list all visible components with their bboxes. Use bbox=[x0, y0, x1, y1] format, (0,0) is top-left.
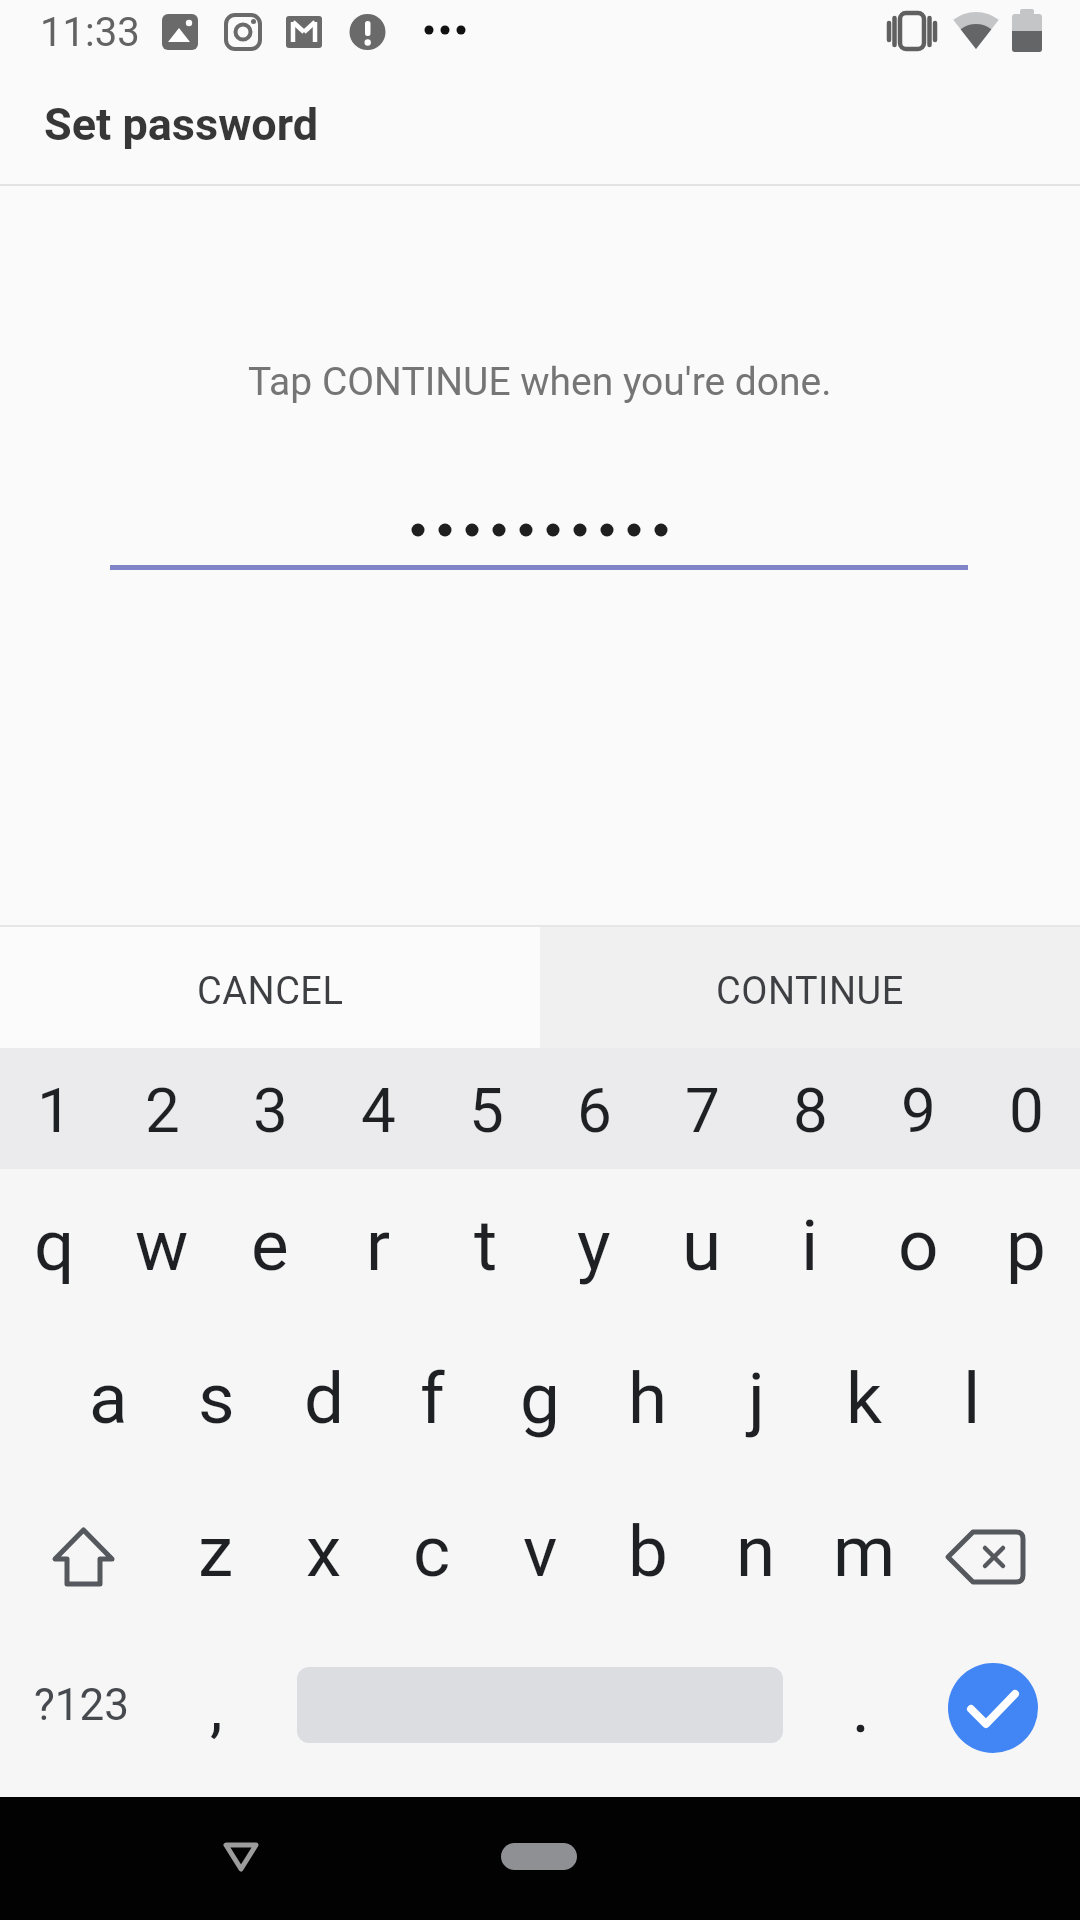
staticText: ?123 bbox=[34, 1679, 129, 1731]
button[interactable]: , bbox=[162, 1628, 270, 1781]
staticText: 6 bbox=[577, 1074, 612, 1147]
button[interactable]: v bbox=[486, 1475, 594, 1628]
staticText: 1 bbox=[37, 1074, 72, 1147]
button[interactable] bbox=[948, 1663, 1038, 1753]
button[interactable] bbox=[495, 1827, 585, 1889]
button[interactable]: j bbox=[702, 1322, 810, 1475]
button[interactable]: o bbox=[864, 1169, 972, 1322]
button[interactable]: 7 bbox=[648, 1048, 756, 1169]
button[interactable]: 0 bbox=[972, 1048, 1080, 1169]
button[interactable]: 9 bbox=[864, 1048, 972, 1169]
button[interactable]: f bbox=[378, 1322, 486, 1475]
staticText: , bbox=[210, 1671, 223, 1746]
staticText: g bbox=[520, 1357, 560, 1440]
staticText: v bbox=[523, 1510, 558, 1593]
staticText: 2 bbox=[145, 1074, 180, 1147]
staticText: 0 bbox=[1009, 1074, 1044, 1147]
button[interactable] bbox=[918, 1475, 1080, 1628]
button[interactable]: z bbox=[162, 1475, 270, 1628]
button[interactable]: 2 bbox=[108, 1048, 216, 1169]
button[interactable] bbox=[205, 1827, 275, 1889]
staticText: Set password bbox=[44, 98, 319, 151]
button[interactable]: i bbox=[756, 1169, 864, 1322]
staticText: y bbox=[577, 1204, 611, 1287]
button[interactable]: h bbox=[594, 1322, 702, 1475]
staticText: f bbox=[420, 1357, 445, 1440]
button[interactable]: 1 bbox=[0, 1048, 108, 1169]
staticText: 7 bbox=[685, 1074, 720, 1147]
button[interactable]: g bbox=[486, 1322, 594, 1475]
button[interactable]: 5 bbox=[432, 1048, 540, 1169]
staticText: 9 bbox=[901, 1074, 936, 1147]
button[interactable]: p bbox=[972, 1169, 1080, 1322]
button[interactable]: ?123 bbox=[0, 1628, 162, 1781]
staticText: z bbox=[198, 1510, 234, 1593]
staticText: 3 bbox=[253, 1074, 288, 1147]
button[interactable]: 6 bbox=[540, 1048, 648, 1169]
button[interactable]: d bbox=[270, 1322, 378, 1475]
button[interactable]: n bbox=[702, 1475, 810, 1628]
staticText: 4 bbox=[361, 1074, 396, 1147]
button[interactable]: w bbox=[108, 1169, 216, 1322]
staticText: h bbox=[628, 1357, 668, 1440]
button[interactable]: b bbox=[594, 1475, 702, 1628]
button[interactable]: 3 bbox=[216, 1048, 324, 1169]
button[interactable]: m bbox=[810, 1475, 918, 1628]
button[interactable]: t bbox=[432, 1169, 540, 1322]
button[interactable]: y bbox=[540, 1169, 648, 1322]
staticText: j bbox=[748, 1357, 765, 1440]
staticText: 5 bbox=[469, 1074, 504, 1147]
button[interactable]: l bbox=[918, 1322, 1026, 1475]
staticText: i bbox=[801, 1204, 819, 1287]
staticText: p bbox=[1006, 1204, 1046, 1287]
staticText: a bbox=[89, 1357, 128, 1440]
button[interactable]: e bbox=[216, 1169, 324, 1322]
staticText: w bbox=[135, 1204, 189, 1287]
button[interactable]: x bbox=[270, 1475, 378, 1628]
staticText: o bbox=[898, 1204, 939, 1287]
staticText: b bbox=[628, 1510, 668, 1593]
staticText: e bbox=[251, 1204, 289, 1287]
button[interactable]: r bbox=[324, 1169, 432, 1322]
button[interactable]: a bbox=[54, 1322, 162, 1475]
button[interactable]: c bbox=[378, 1475, 486, 1628]
staticText: n bbox=[736, 1510, 776, 1593]
staticText: m bbox=[833, 1510, 896, 1593]
staticText: l bbox=[963, 1357, 981, 1440]
staticText: x bbox=[306, 1510, 342, 1593]
staticText: 11:33 bbox=[40, 9, 140, 56]
staticText: s bbox=[198, 1357, 235, 1440]
button[interactable]: 4 bbox=[324, 1048, 432, 1169]
staticText: t bbox=[474, 1204, 498, 1287]
button[interactable]: u bbox=[648, 1169, 756, 1322]
staticText: r bbox=[366, 1204, 391, 1287]
button[interactable] bbox=[810, 1628, 918, 1781]
staticText: 8 bbox=[793, 1074, 828, 1147]
button[interactable]: k bbox=[810, 1322, 918, 1475]
button[interactable]: CONTINUE bbox=[540, 927, 1080, 1048]
staticText: CANCEL bbox=[197, 969, 344, 1014]
button[interactable] bbox=[0, 1475, 162, 1628]
staticText: CONTINUE bbox=[716, 969, 904, 1014]
staticText: c bbox=[413, 1510, 451, 1593]
staticText: q bbox=[34, 1204, 75, 1287]
staticText: k bbox=[846, 1357, 882, 1440]
staticText: d bbox=[304, 1357, 345, 1440]
button[interactable]: q bbox=[0, 1169, 108, 1322]
button[interactable]: 8 bbox=[756, 1048, 864, 1169]
button[interactable]: CANCEL bbox=[0, 927, 540, 1048]
staticText: u bbox=[682, 1204, 722, 1287]
staticText: Tap CONTINUE when you're done. bbox=[248, 359, 832, 405]
button[interactable]: s bbox=[162, 1322, 270, 1475]
